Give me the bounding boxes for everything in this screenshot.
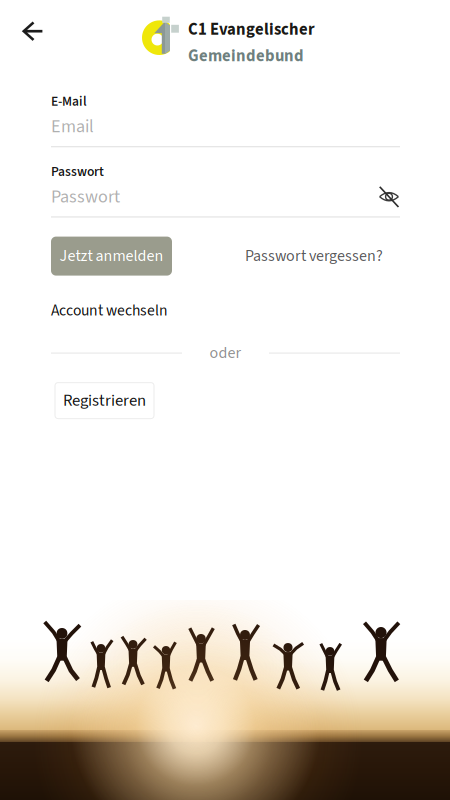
button[interactable]: Passwort anzeigen xyxy=(378,186,400,207)
staticText: E-Mail xyxy=(51,92,87,111)
staticText: Passwort vergessen? xyxy=(245,245,383,267)
staticText: Passwort xyxy=(51,162,104,181)
button[interactable]: Account wechseln xyxy=(0,300,400,322)
staticText: C1 Evangelischer xyxy=(188,18,315,41)
staticText: oder xyxy=(209,342,241,364)
staticText: Jetzt anmelden xyxy=(59,245,163,267)
staticText: Registrieren xyxy=(63,389,146,412)
button[interactable]: Registrieren xyxy=(55,383,154,419)
button[interactable]: Zurück xyxy=(0,0,44,43)
button[interactable]: Passwort vergessen? xyxy=(245,237,383,276)
staticText: Gemeindebund xyxy=(188,44,304,68)
staticText: Account wechseln xyxy=(51,299,168,322)
button[interactable]: Jetzt anmelden xyxy=(51,237,172,276)
staticText: Passwort xyxy=(51,184,120,210)
staticText: Email xyxy=(51,114,94,139)
